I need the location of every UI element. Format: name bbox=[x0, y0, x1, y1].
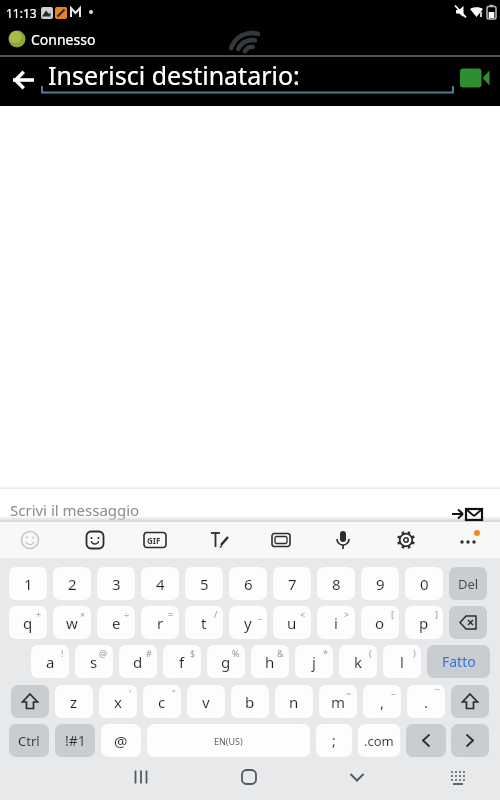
staticText: × bbox=[80, 608, 86, 620]
staticText: ] bbox=[435, 608, 438, 620]
button[interactable]: 2 bbox=[53, 567, 91, 600]
button[interactable]: 9 bbox=[361, 567, 399, 600]
staticText: – bbox=[391, 687, 396, 699]
button[interactable] bbox=[11, 685, 49, 718]
staticText: f bbox=[179, 652, 185, 672]
button[interactable]: .com bbox=[358, 724, 400, 757]
button[interactable] bbox=[448, 522, 488, 558]
button[interactable] bbox=[10, 522, 50, 558]
staticText: & bbox=[277, 647, 284, 659]
button[interactable] bbox=[323, 522, 363, 558]
staticText: c bbox=[158, 692, 166, 712]
button[interactable]: @ bbox=[101, 724, 141, 757]
button[interactable]: 4 bbox=[141, 567, 179, 600]
staticText: # bbox=[146, 647, 152, 659]
staticText: v bbox=[202, 692, 210, 712]
button[interactable]: . bbox=[407, 685, 445, 718]
button[interactable] bbox=[221, 758, 277, 800]
staticText: h bbox=[265, 652, 275, 672]
button[interactable]: u bbox=[273, 606, 311, 639]
button[interactable] bbox=[451, 724, 489, 757]
staticText: g bbox=[221, 652, 231, 672]
button[interactable] bbox=[75, 522, 115, 558]
staticText: Del bbox=[458, 575, 479, 593]
button[interactable] bbox=[430, 758, 486, 800]
button[interactable]: z bbox=[55, 685, 93, 718]
staticText: s bbox=[90, 652, 98, 672]
button[interactable] bbox=[386, 522, 426, 558]
button[interactable]: Fatto bbox=[427, 645, 490, 678]
staticText: 7 bbox=[288, 574, 297, 594]
button[interactable]: , bbox=[363, 685, 401, 718]
staticText: 3 bbox=[112, 574, 121, 594]
button[interactable]: 1 bbox=[9, 567, 47, 600]
button[interactable] bbox=[329, 758, 385, 800]
button[interactable] bbox=[449, 606, 487, 639]
staticText: Fatto bbox=[442, 652, 476, 671]
button[interactable]: 7 bbox=[273, 567, 311, 600]
button[interactable]: ; bbox=[316, 724, 352, 757]
button[interactable]: 6 bbox=[229, 567, 267, 600]
button[interactable] bbox=[444, 496, 490, 522]
button[interactable]: v bbox=[187, 685, 225, 718]
button[interactable]: i bbox=[317, 606, 355, 639]
button[interactable] bbox=[199, 522, 239, 558]
button[interactable] bbox=[135, 522, 175, 558]
button[interactable]: b bbox=[231, 685, 269, 718]
staticText: 9 bbox=[376, 574, 385, 594]
button[interactable]: Del bbox=[449, 567, 487, 600]
staticText: t bbox=[201, 613, 207, 633]
button[interactable]: 8 bbox=[317, 567, 355, 600]
button[interactable] bbox=[113, 758, 169, 800]
staticText: r bbox=[157, 613, 164, 633]
button[interactable]: p bbox=[405, 606, 443, 639]
button[interactable]: 3 bbox=[97, 567, 135, 600]
button[interactable] bbox=[261, 522, 301, 558]
button[interactable]: t bbox=[185, 606, 223, 639]
button[interactable]: q bbox=[9, 606, 47, 639]
staticText: ' bbox=[129, 687, 132, 699]
staticText: ÷ bbox=[124, 608, 130, 620]
staticText: _ bbox=[258, 608, 262, 620]
staticText: j bbox=[312, 652, 316, 672]
staticText: Connesso bbox=[31, 30, 96, 49]
button[interactable]: k bbox=[339, 645, 377, 678]
button[interactable] bbox=[452, 62, 496, 94]
button[interactable]: n bbox=[275, 685, 313, 718]
button[interactable]: m bbox=[319, 685, 357, 718]
button[interactable] bbox=[406, 724, 446, 757]
button[interactable]: y bbox=[229, 606, 267, 639]
button[interactable]: 5 bbox=[185, 567, 223, 600]
button[interactable]: r bbox=[141, 606, 179, 639]
button[interactable] bbox=[4, 62, 40, 98]
button[interactable]: h bbox=[251, 645, 289, 678]
button[interactable] bbox=[0, 488, 500, 522]
staticText: + bbox=[36, 608, 42, 620]
button[interactable]: e bbox=[97, 606, 135, 639]
button[interactable]: f bbox=[163, 645, 201, 678]
button[interactable]: x bbox=[99, 685, 137, 718]
button[interactable]: 0 bbox=[405, 567, 443, 600]
staticText: u bbox=[287, 613, 297, 633]
button[interactable]: w bbox=[53, 606, 91, 639]
staticText: y bbox=[244, 613, 252, 633]
button[interactable]: !#1 bbox=[55, 724, 95, 757]
button[interactable]: g bbox=[207, 645, 245, 678]
staticText: EN(US) bbox=[214, 735, 243, 747]
staticText: Ctrl bbox=[18, 732, 40, 750]
button[interactable]: a bbox=[31, 645, 69, 678]
button[interactable]: s bbox=[75, 645, 113, 678]
staticText: e bbox=[112, 613, 121, 633]
button[interactable]: l bbox=[383, 645, 421, 678]
button[interactable]: Inserisci destinatario: bbox=[40, 58, 454, 98]
staticText: % bbox=[232, 647, 240, 659]
staticText: ; bbox=[332, 731, 336, 750]
button[interactable]: j bbox=[295, 645, 333, 678]
button[interactable]: c bbox=[143, 685, 181, 718]
button[interactable]: Ctrl bbox=[9, 724, 49, 757]
button[interactable] bbox=[451, 685, 489, 718]
button[interactable]: EN(US) bbox=[147, 724, 310, 757]
button[interactable]: o bbox=[361, 606, 399, 639]
staticText: m bbox=[331, 692, 346, 712]
button[interactable]: d bbox=[119, 645, 157, 678]
